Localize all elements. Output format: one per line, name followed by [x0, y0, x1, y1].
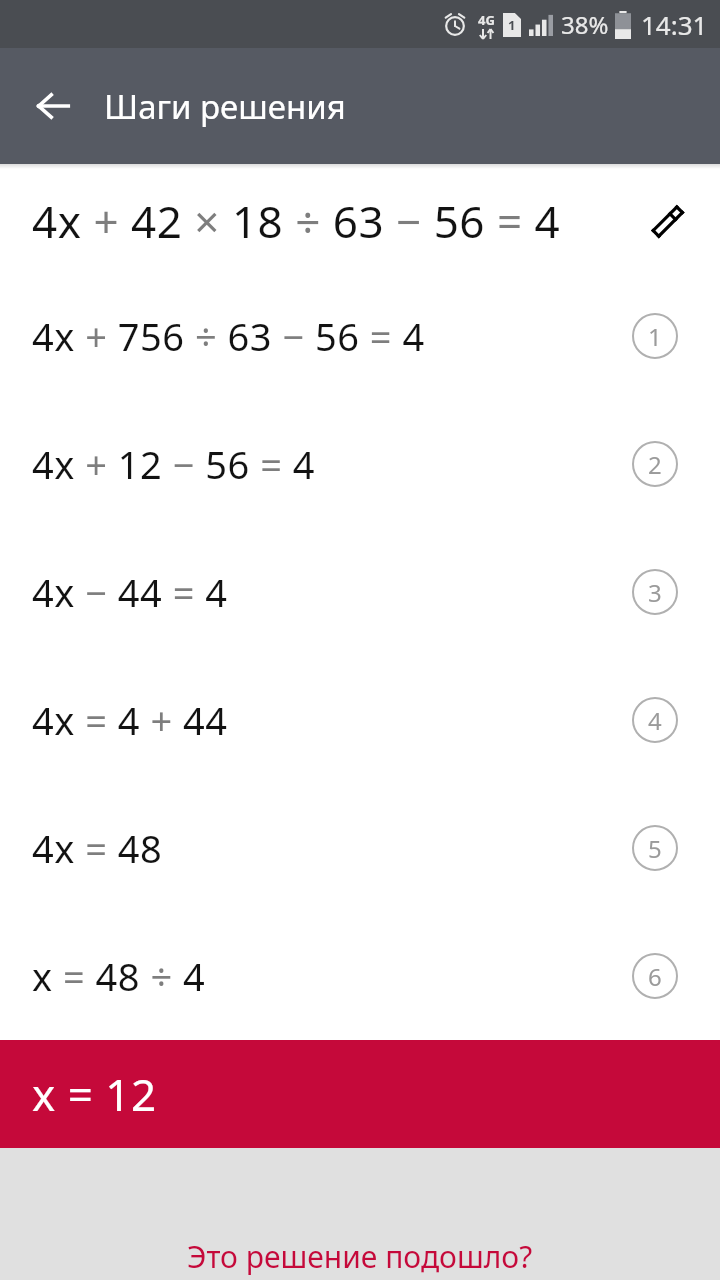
staticText: 4x + 12 − 56 = 4 — [32, 438, 316, 490]
button[interactable]: 4x = 4 + 44 — [0, 656, 720, 784]
button[interactable]: 4x = 48 — [0, 784, 720, 912]
staticText: 4x = 4 + 44 — [32, 694, 228, 746]
staticText: 6 — [648, 960, 662, 993]
button[interactable]: 4x + 12 − 56 = 4 — [0, 400, 720, 528]
staticText: Шаги решения — [104, 84, 346, 129]
button[interactable]: 4x + 42 × 18 ÷ 63 − 56 = 4 — [0, 169, 720, 272]
staticText: 38% — [561, 8, 609, 41]
staticText: 14:31 — [641, 7, 708, 42]
button[interactable]: x = 12 — [0, 1040, 720, 1148]
staticText: 4x + 756 ÷ 63 − 56 = 4 — [32, 310, 425, 362]
staticText: Это решение подошло? — [187, 1236, 533, 1277]
staticText: x = 12 — [32, 1064, 157, 1124]
button[interactable]: Edit — [638, 191, 698, 251]
staticText: 1 — [648, 320, 662, 353]
staticText: 4G — [478, 11, 495, 29]
staticText: 2 — [648, 448, 662, 481]
staticText: 4x = 48 — [32, 822, 163, 874]
staticText: 4x + 42 × 18 ÷ 63 − 56 = 4 — [32, 191, 561, 251]
button[interactable]: Back — [20, 73, 86, 139]
staticText: 3 — [648, 576, 662, 609]
button[interactable]: Это решение подошло? — [163, 1226, 557, 1280]
staticText: 1 — [508, 16, 516, 34]
button[interactable]: 4x + 756 ÷ 63 − 56 = 4 — [0, 272, 720, 400]
staticText: 4 — [648, 704, 662, 737]
staticText: 4x − 44 = 4 — [32, 566, 228, 618]
staticText: x = 48 ÷ 4 — [32, 950, 206, 1002]
button[interactable]: x = 48 ÷ 4 — [0, 912, 720, 1040]
staticText: 5 — [648, 832, 662, 865]
button[interactable]: 4x − 44 = 4 — [0, 528, 720, 656]
